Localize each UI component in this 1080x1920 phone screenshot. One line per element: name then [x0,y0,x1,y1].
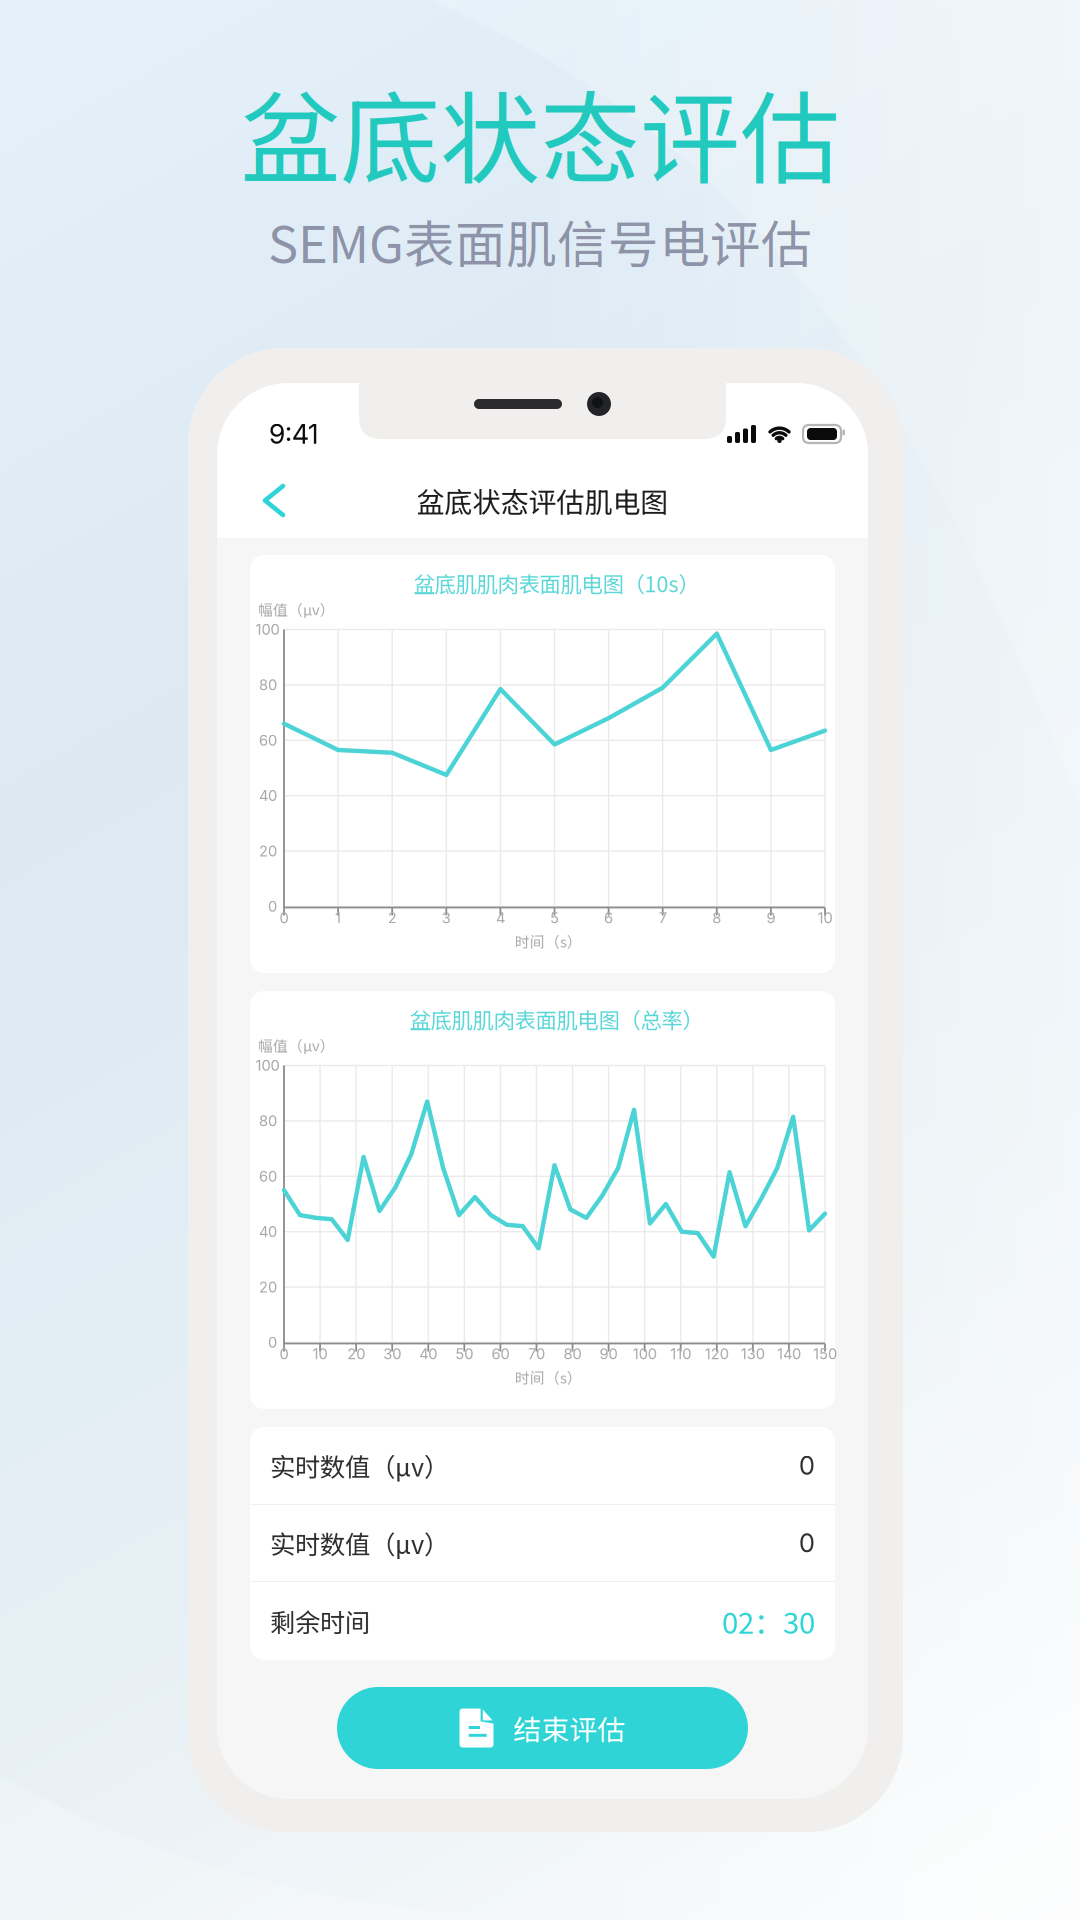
staticText: 3 [442,909,451,927]
staticText: 30 [383,1345,401,1363]
staticText: 1 [335,909,341,927]
staticText: 剩余时间 [270,1603,370,1639]
staticText: 130 [741,1345,765,1363]
staticText: 100 [633,1345,657,1363]
staticText: 02：30 [722,1600,815,1642]
staticText: 100 [255,621,279,638]
staticText: 9:41 [269,418,318,450]
staticText: 40 [419,1345,437,1363]
staticText: 60 [259,731,277,749]
button[interactable]: 返回 [243,470,305,531]
staticText: 实时数值（μv） [270,1447,449,1484]
staticText: 40 [259,1223,277,1240]
staticText: 140 [777,1345,801,1363]
staticText: 盆底肌肌肉表面肌电图（总率） [409,1004,703,1034]
staticText: 50 [455,1345,473,1363]
button[interactable]: 结束评估 [337,1687,748,1769]
staticText: 7 [659,909,667,927]
staticText: 0 [268,898,277,915]
staticText: 100 [255,1057,279,1074]
staticText: 60 [259,1167,277,1185]
staticText: 20 [259,1278,277,1296]
staticText: 2 [388,909,397,927]
staticText: 90 [600,1345,618,1363]
staticText: 8 [712,909,721,927]
staticText: 时间（s） [515,1366,582,1388]
staticText: 10 [313,1345,328,1363]
staticText: 0 [279,1345,288,1363]
staticText: 盆底状态评估肌电图 [416,480,668,521]
staticText: 4 [496,909,505,927]
staticText: 20 [259,842,277,860]
staticText: 80 [259,1112,277,1130]
staticText: SEMG表面肌信号电评估 [268,204,812,278]
staticText: 结束评估 [513,1708,625,1748]
staticText: 110 [670,1345,691,1363]
staticText: 盆底状态评估 [240,60,840,204]
staticText: 120 [705,1345,729,1363]
staticText: 0 [799,1450,815,1481]
staticText: 150 [813,1345,837,1363]
staticText: 5 [550,909,559,927]
staticText: 9 [766,909,775,927]
staticText: 0 [279,909,288,927]
staticText: 时间（s） [515,930,582,952]
staticText: 盆底肌肌肉表面肌电图（10s） [413,568,699,598]
staticText: 60 [491,1345,509,1363]
staticText: 80 [259,676,277,694]
staticText: 0 [268,1334,277,1351]
staticText: 80 [563,1345,581,1363]
staticText: 10 [817,909,832,927]
staticText: 幅值（μv） [258,1034,335,1056]
staticText: 70 [528,1345,545,1363]
staticText: 6 [604,909,613,927]
staticText: 0 [799,1528,815,1558]
staticText: 幅值（μv） [258,598,335,620]
staticText: 40 [259,787,277,804]
staticText: 实时数值（μv） [270,1525,449,1561]
staticText: 20 [347,1345,365,1363]
